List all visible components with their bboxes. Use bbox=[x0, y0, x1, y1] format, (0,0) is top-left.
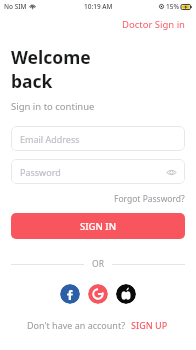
staticText: Forgot Password? bbox=[114, 193, 185, 205]
button[interactable]: Sign in with Facebook bbox=[60, 284, 80, 304]
button[interactable]: Doctor Sign in bbox=[112, 13, 196, 35]
staticText: Sign in to continue bbox=[11, 100, 95, 113]
staticText: Don't have an account? bbox=[27, 319, 126, 331]
staticText: SIGN IN bbox=[80, 220, 117, 233]
button[interactable]: Password bbox=[11, 159, 185, 184]
button[interactable]: Sign in with Apple bbox=[116, 284, 136, 304]
button[interactable]: Email Address bbox=[11, 126, 185, 151]
staticText: Password bbox=[20, 166, 61, 178]
button[interactable]: Sign in with Google bbox=[88, 284, 108, 304]
button[interactable]: SIGN IN bbox=[11, 213, 185, 239]
button[interactable]: Forgot Password? bbox=[104, 190, 196, 208]
staticText: OR bbox=[92, 258, 104, 270]
staticText: 10:19 AM bbox=[84, 2, 113, 11]
staticText: Welcome bbox=[11, 45, 91, 69]
staticText: 15% bbox=[166, 2, 179, 11]
staticText: Doctor Sign in bbox=[122, 18, 185, 31]
button[interactable]: Show password bbox=[165, 166, 177, 178]
staticText: Email Address bbox=[20, 133, 80, 145]
staticText: SIGN UP bbox=[131, 319, 168, 331]
staticText: back bbox=[11, 69, 53, 93]
button[interactable]: SIGN UP bbox=[126, 316, 170, 334]
staticText: No SIM bbox=[4, 2, 27, 11]
